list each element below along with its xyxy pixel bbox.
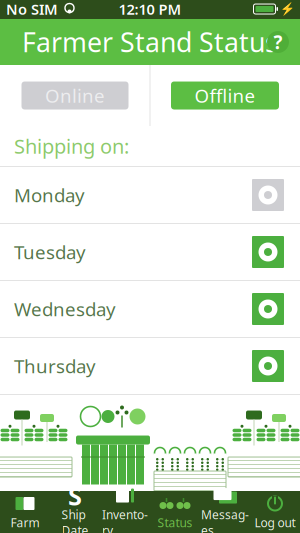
button[interactable]: Offline xyxy=(171,81,279,109)
staticText: Farmer Stand Status xyxy=(22,24,278,60)
button[interactable]: Inventory xyxy=(100,491,150,533)
staticText: ⚡ xyxy=(280,2,295,16)
staticText: Offline xyxy=(194,83,255,108)
staticText: Log out xyxy=(254,514,295,530)
staticText: 12:10 PM xyxy=(118,0,181,19)
button[interactable]: Farm xyxy=(0,491,50,533)
button[interactable]: Status xyxy=(150,491,200,533)
staticText: Monday xyxy=(14,183,85,207)
button[interactable]: S xyxy=(50,491,100,533)
staticText: Thursday xyxy=(14,354,96,378)
staticText: Inventory xyxy=(102,507,148,533)
staticText: Ship Date xyxy=(61,507,88,533)
staticText: Wednesday xyxy=(14,297,116,321)
staticText: Farm xyxy=(10,514,39,530)
button[interactable]: Monday xyxy=(0,167,300,223)
staticText: No SIM xyxy=(6,0,58,19)
button[interactable]: Online xyxy=(21,81,128,109)
button[interactable]: Messages xyxy=(200,491,250,533)
button[interactable]: Tuesday xyxy=(0,224,300,280)
button[interactable]: Help xyxy=(261,25,295,59)
staticText: Online xyxy=(45,83,105,108)
staticText xyxy=(58,0,64,24)
button[interactable]: Thursday xyxy=(0,338,300,394)
staticText: Tuesday xyxy=(14,240,86,264)
staticText: ? xyxy=(273,30,282,54)
staticText: Status xyxy=(157,514,192,530)
button[interactable]: Log out xyxy=(250,491,300,533)
staticText: Messages xyxy=(201,507,249,533)
staticText: S xyxy=(68,479,82,512)
staticText: Shipping on: xyxy=(14,133,129,159)
button[interactable]: Wednesday xyxy=(0,281,300,337)
